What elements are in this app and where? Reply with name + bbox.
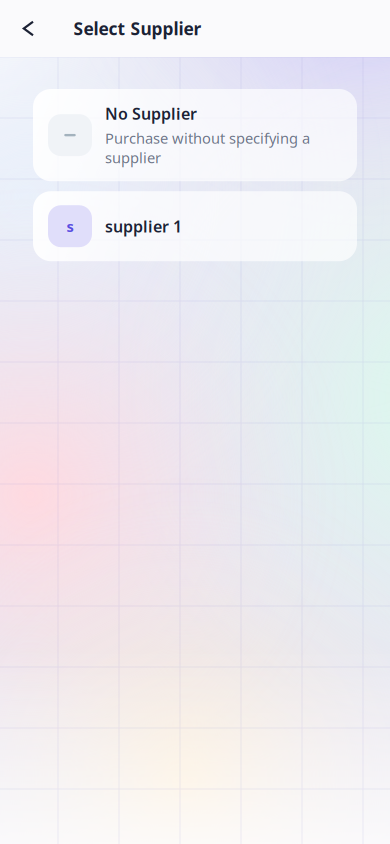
button[interactable]: s [33, 191, 357, 261]
staticText: Purchase without specifying a supplier [105, 128, 310, 167]
staticText: supplier 1 [105, 216, 182, 237]
staticText: Select Supplier [73, 17, 201, 40]
staticText: s [66, 216, 73, 236]
staticText: No Supplier [105, 103, 197, 124]
button[interactable]: No Supplier [33, 89, 357, 181]
button[interactable]: Back [0, 6, 48, 50]
